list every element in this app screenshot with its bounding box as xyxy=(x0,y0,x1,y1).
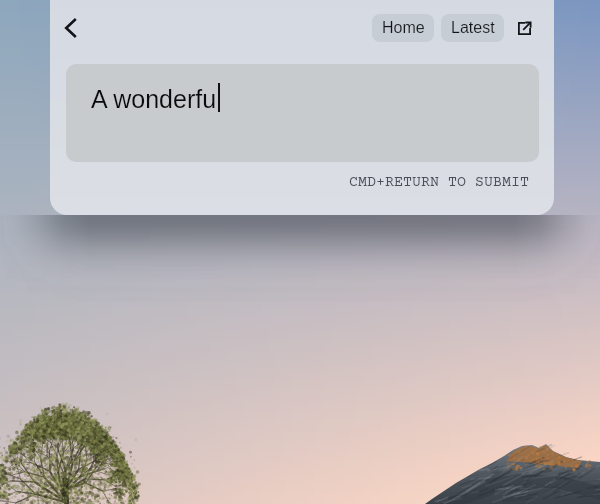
button[interactable]: Latest xyxy=(441,14,504,42)
button[interactable]: A wonderfu xyxy=(66,64,539,162)
staticText: Home xyxy=(382,19,425,37)
button[interactable]: Back xyxy=(53,10,89,46)
staticText: Latest xyxy=(451,19,495,37)
button[interactable]: Home xyxy=(372,14,434,42)
staticText: CMD+RETURN TO SUBMIT xyxy=(349,174,529,191)
staticText: A wonderfu xyxy=(91,85,217,113)
button[interactable]: Open in new window xyxy=(513,17,535,39)
